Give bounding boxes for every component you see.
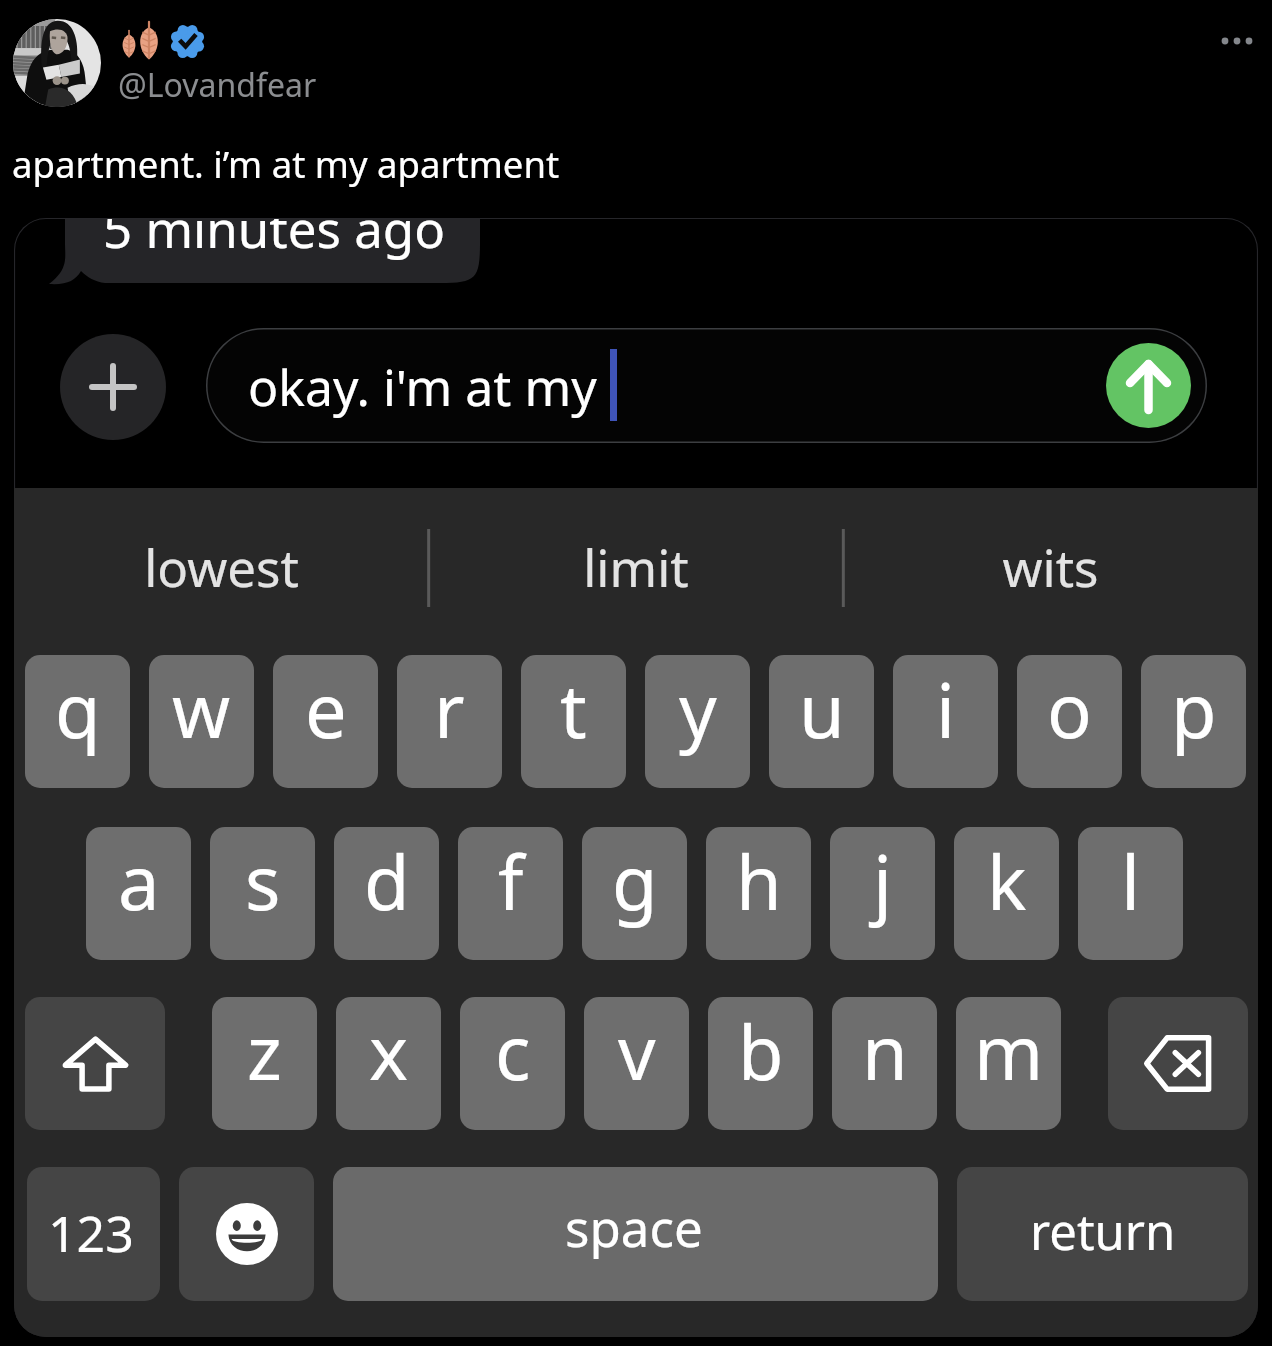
button[interactable]: i: [893, 655, 998, 788]
staticText: y: [679, 659, 717, 760]
staticText: l: [1121, 831, 1141, 932]
button[interactable]: okay. i'm at my: [206, 328, 1207, 443]
button[interactable]: k: [954, 827, 1059, 960]
staticText: wits: [1002, 532, 1099, 601]
staticText: f: [498, 831, 524, 932]
button[interactable]: w: [149, 655, 254, 788]
button[interactable]: More options: [1199, 19, 1263, 63]
staticText: s: [245, 831, 281, 932]
button[interactable]: f: [458, 827, 563, 960]
button[interactable]: t: [521, 655, 626, 788]
staticText: a: [118, 831, 160, 932]
staticText: d: [364, 831, 410, 932]
staticText: j: [873, 831, 893, 932]
staticText: apartment. i’m at my apartment: [12, 139, 560, 189]
staticText: space: [565, 1192, 703, 1261]
staticText: c: [495, 1001, 531, 1102]
staticText: 5 minutes ago: [103, 218, 446, 262]
button[interactable]: l: [1078, 827, 1183, 960]
staticText: m: [974, 1001, 1044, 1102]
button[interactable]: m: [956, 997, 1061, 1130]
button[interactable]: Emoji: [179, 1167, 314, 1301]
staticText: u: [799, 659, 845, 760]
button[interactable]: q: [25, 655, 130, 788]
button[interactable]: limit: [428, 488, 843, 656]
staticText: k: [987, 831, 1027, 932]
button[interactable]: 123: [27, 1167, 160, 1301]
staticText: n: [862, 1001, 908, 1102]
button[interactable]: e: [273, 655, 378, 788]
staticText: okay. i'm at my: [248, 353, 597, 421]
staticText: q: [55, 659, 101, 760]
staticText: lowest: [144, 532, 299, 601]
button[interactable]: b: [708, 997, 813, 1130]
button[interactable]: n: [832, 997, 937, 1130]
staticText: o: [1047, 659, 1092, 760]
button[interactable]: d: [334, 827, 439, 960]
button[interactable]: Send: [1106, 343, 1191, 428]
staticText: e: [305, 659, 347, 760]
staticText: r: [434, 659, 465, 760]
button[interactable]: g: [582, 827, 687, 960]
button[interactable]: Profile picture: [13, 19, 101, 107]
button[interactable]: y: [645, 655, 750, 788]
staticText: b: [738, 1001, 784, 1102]
staticText: h: [736, 831, 782, 932]
staticText: t: [560, 659, 587, 760]
button[interactable]: z: [212, 997, 317, 1130]
button[interactable]: x: [336, 997, 441, 1130]
button[interactable]: wits: [843, 488, 1258, 656]
button[interactable]: u: [769, 655, 874, 788]
button[interactable]: return: [957, 1167, 1248, 1301]
staticText: return: [1030, 1198, 1176, 1265]
staticText: v: [618, 1001, 656, 1102]
button[interactable]: Backspace: [1108, 997, 1248, 1130]
button[interactable]: o: [1017, 655, 1122, 788]
staticText: limit: [583, 532, 689, 601]
button[interactable]: Shift: [25, 997, 165, 1130]
staticText: g: [612, 831, 658, 932]
button[interactable]: space: [333, 1167, 938, 1301]
button[interactable]: Add attachment: [60, 334, 166, 440]
staticText: w: [172, 659, 231, 760]
staticText: x: [369, 1001, 409, 1102]
staticText: p: [1171, 659, 1217, 760]
button[interactable]: j: [830, 827, 935, 960]
button[interactable]: lowest: [14, 488, 428, 656]
button[interactable]: s: [210, 827, 315, 960]
button[interactable]: r: [397, 655, 502, 788]
button[interactable]: v: [584, 997, 689, 1130]
staticText: i: [936, 659, 956, 760]
button[interactable]: a: [86, 827, 191, 960]
button[interactable]: p: [1141, 655, 1246, 788]
button[interactable]: c: [460, 997, 565, 1130]
button[interactable]: h: [706, 827, 811, 960]
staticText: 123: [48, 1199, 134, 1267]
staticText: z: [247, 1001, 282, 1102]
staticText: @Lovandfear: [118, 63, 317, 107]
